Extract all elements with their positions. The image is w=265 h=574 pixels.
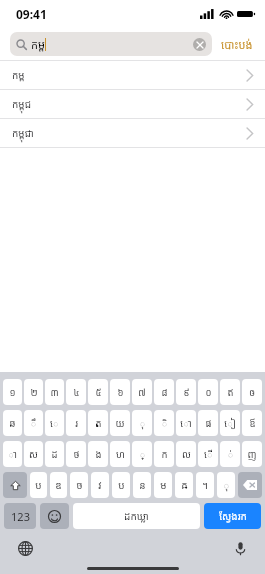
staticText: ៥: [95, 386, 102, 399]
staticText: ឪ: [249, 417, 256, 430]
staticText: ដកឃ្លា: [124, 509, 149, 523]
staticText: ឹ: [30, 417, 37, 430]
button[interactable]: Clear text: [193, 38, 206, 51]
staticText: ៣: [50, 386, 59, 399]
button[interactable]: វ: [91, 472, 109, 498]
staticText: កម្ពុជា: [12, 126, 34, 140]
button[interactable]: ស្វែងរក: [204, 503, 261, 529]
button[interactable]: ៨: [154, 379, 174, 405]
staticText: ឝ: [181, 478, 188, 492]
staticText: ផ: [205, 417, 212, 430]
button[interactable]: ម: [154, 472, 172, 498]
button[interactable]: Backspace: [238, 472, 262, 498]
button[interactable]: ត: [88, 410, 108, 436]
button[interactable]: ង: [88, 441, 108, 467]
button[interactable]: ឝ: [175, 472, 193, 498]
staticText: ហ: [116, 448, 125, 461]
button[interactable]: កម្ពុជា: [0, 119, 265, 147]
staticText: ត: [95, 417, 102, 430]
staticText: ស្វែងរក: [219, 509, 247, 523]
button[interactable]: ២: [24, 379, 43, 405]
staticText: ក: [161, 448, 168, 461]
staticText: កម្ព: [31, 37, 45, 52]
button[interactable]: ើ: [198, 441, 218, 467]
button[interactable]: ស: [24, 441, 43, 467]
button[interactable]: ក: [154, 441, 174, 467]
staticText: ឲ: [249, 386, 255, 399]
button[interactable]: ឪ: [242, 410, 262, 436]
button[interactable]: ញ: [242, 441, 262, 467]
button[interactable]: ៧: [132, 379, 152, 405]
button[interactable]: ផ: [198, 410, 218, 436]
button[interactable]: ិ: [154, 410, 174, 436]
button[interactable]: ៀ: [220, 410, 240, 436]
staticText: កម្ព: [12, 68, 25, 82]
button[interactable]: Shift: [3, 472, 27, 498]
button[interactable]: ឥ: [220, 379, 240, 405]
staticText: ើ: [204, 448, 213, 461]
button[interactable]: Voice input: [229, 537, 251, 559]
staticText: ២: [30, 386, 38, 399]
button[interactable]: ៩: [176, 379, 196, 405]
button[interactable]: Emoji: [40, 503, 69, 529]
button[interactable]: ០: [198, 379, 218, 405]
staticText: ន: [139, 478, 146, 492]
staticText: ញ: [247, 448, 257, 461]
button[interactable]: ឲ: [242, 379, 262, 405]
button[interactable]: ដ: [45, 441, 64, 467]
staticText: ុ: [139, 417, 146, 430]
button[interactable]: ្: [132, 441, 152, 467]
staticText: កម្ពុជ: [12, 97, 32, 111]
staticText: ៦: [117, 386, 124, 399]
button[interactable]: ថ: [66, 441, 86, 467]
staticText: ា: [8, 448, 17, 461]
staticText: ស: [29, 448, 38, 461]
button[interactable]: ឹ: [24, 410, 43, 436]
button[interactable]: ១: [3, 379, 22, 405]
staticText: រ: [75, 417, 78, 430]
staticText: ៨: [161, 386, 168, 399]
staticText: ៤: [73, 386, 80, 399]
button[interactable]: ៣: [45, 379, 64, 405]
staticText: ឆ: [9, 417, 16, 430]
button[interactable]: ។: [196, 472, 214, 498]
button[interactable]: ៦: [110, 379, 130, 405]
button[interactable]: ប: [112, 472, 130, 498]
button[interactable]: កម្ព: [10, 32, 212, 56]
button[interactable]: ឌ: [50, 472, 67, 498]
button[interactable]: បោះបង់: [219, 33, 255, 56]
button[interactable]: ់: [220, 441, 240, 467]
staticText: ឥ: [227, 386, 234, 399]
staticText: ប: [118, 478, 125, 492]
button[interactable]: រ: [66, 410, 86, 436]
button[interactable]: ឆ: [3, 410, 22, 436]
button[interactable]: 123: [4, 503, 36, 529]
staticText: ច: [76, 478, 83, 492]
button[interactable]: ន: [133, 472, 151, 498]
button[interactable]: ដកឃ្លា: [73, 503, 200, 529]
button[interactable]: ា: [3, 441, 22, 467]
staticText: ោ: [180, 417, 192, 430]
button[interactable]: ុ: [217, 472, 235, 498]
button[interactable]: កម្ព: [0, 61, 265, 89]
staticText: វ: [98, 478, 102, 492]
staticText: ៧: [138, 386, 146, 399]
staticText: 09:41: [16, 6, 47, 22]
button[interactable]: យ: [110, 410, 130, 436]
button[interactable]: ប: [30, 472, 47, 498]
button[interactable]: ហ: [110, 441, 130, 467]
button[interactable]: ៤: [66, 379, 86, 405]
staticText: ិ: [161, 417, 168, 430]
button[interactable]: ៥: [88, 379, 108, 405]
staticText: ុ: [223, 478, 230, 492]
button[interactable]: ោ: [176, 410, 196, 436]
button[interactable]: ល: [176, 441, 196, 467]
staticText: ដ: [51, 448, 58, 461]
button[interactable]: កម្ពុជ: [0, 90, 265, 118]
button[interactable]: Change keyboard language: [14, 537, 36, 559]
button[interactable]: េ: [45, 410, 64, 436]
button[interactable]: ុ: [132, 410, 152, 436]
staticText: 123: [11, 509, 30, 524]
button[interactable]: ច: [70, 472, 88, 498]
staticText: ៩: [183, 386, 190, 399]
